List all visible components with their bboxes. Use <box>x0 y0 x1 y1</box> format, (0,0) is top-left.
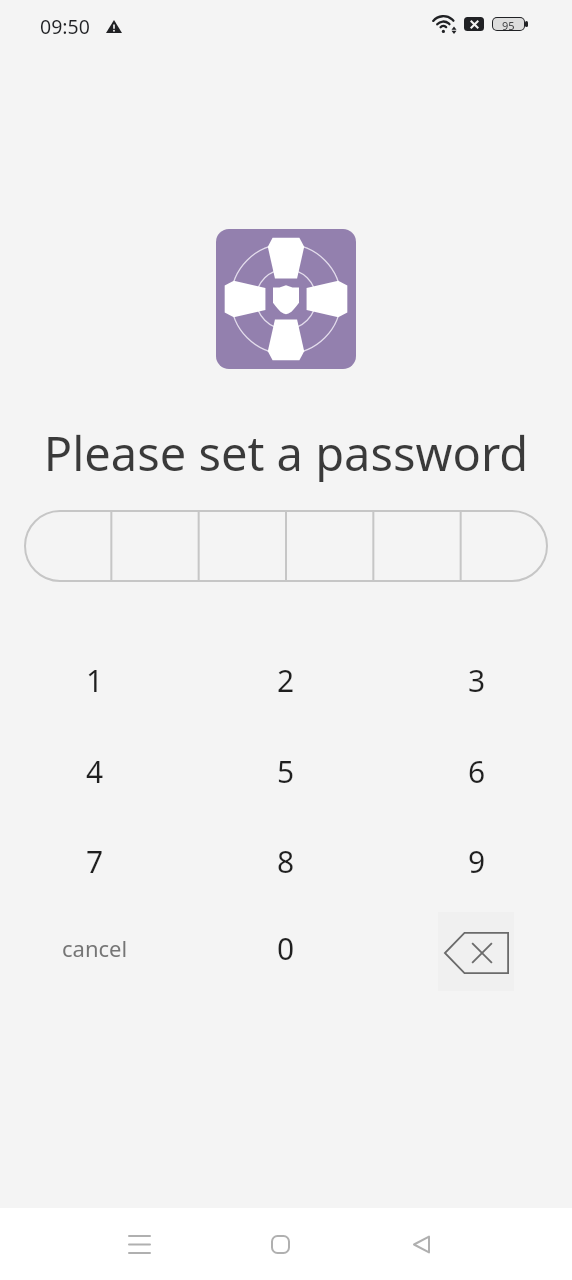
staticText: 6 <box>468 751 486 792</box>
button[interactable]: 0 <box>190 905 381 991</box>
button[interactable]: 3 <box>381 635 572 726</box>
button[interactable]: 9 <box>381 817 572 905</box>
button[interactable]: 5 <box>190 726 381 817</box>
button[interactable]: Back <box>373 1208 469 1280</box>
button[interactable]: 1 <box>0 635 190 726</box>
staticText: 4 <box>86 751 104 792</box>
button[interactable]: 2 <box>190 635 381 726</box>
button[interactable]: 4 <box>0 726 190 817</box>
other: Backspace <box>438 912 514 991</box>
staticText: 3 <box>468 660 486 701</box>
staticText: 1 <box>86 660 104 701</box>
button[interactable]: Backspace <box>381 905 572 991</box>
staticText: 9 <box>468 841 486 882</box>
button[interactable]: Home <box>232 1208 328 1280</box>
staticText: 8 <box>277 841 295 882</box>
staticText: 7 <box>86 841 104 882</box>
button[interactable]: 8 <box>190 817 381 905</box>
staticText: cancel <box>62 933 128 963</box>
staticText: 95 <box>502 18 515 30</box>
staticText: 0 <box>277 928 295 969</box>
button[interactable]: cancel <box>0 905 190 991</box>
button[interactable]: 7 <box>0 817 190 905</box>
staticText: 09:50 <box>40 13 90 40</box>
button[interactable]: Password entry field <box>24 510 548 582</box>
button[interactable]: 6 <box>381 726 572 817</box>
staticText: Please set a password <box>0 421 572 485</box>
staticText: 5 <box>277 751 295 792</box>
staticText: 2 <box>277 660 295 701</box>
button[interactable]: Recent apps <box>91 1208 187 1280</box>
